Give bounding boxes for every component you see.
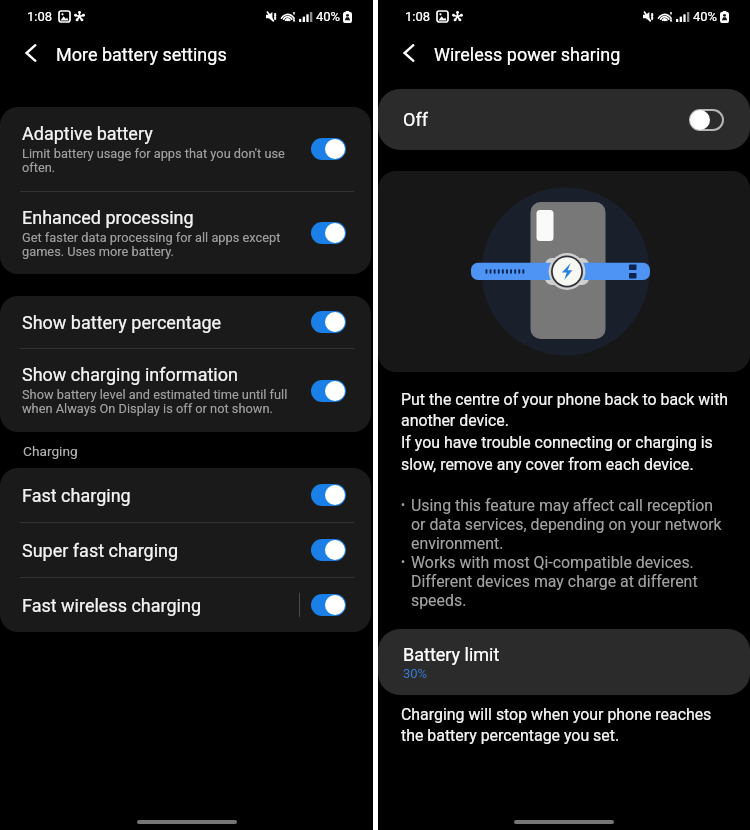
staticText: Fast wireless charging — [22, 595, 202, 616]
staticText: Off — [403, 109, 689, 130]
staticText: Charging will stop when your phone reach… — [401, 705, 726, 745]
button[interactable]: Super fast charging — [0, 523, 371, 577]
staticText: Charging — [23, 443, 78, 459]
button[interactable]: Battery limit — [378, 629, 750, 695]
button[interactable]: Fast charging — [0, 468, 371, 522]
button[interactable]: Show battery percentage — [0, 296, 371, 348]
staticText: Show battery level and estimated time un… — [22, 387, 290, 417]
staticText: Show battery percentage — [22, 312, 222, 333]
staticText: Limit battery usage for apps that you do… — [22, 146, 290, 176]
button[interactable]: Off — [378, 89, 750, 150]
staticText: Adaptive battery — [22, 123, 153, 144]
staticText: 1:08 — [27, 9, 53, 24]
staticText: Wireless power sharing — [434, 44, 621, 65]
staticText: Enhanced processing — [22, 207, 194, 228]
button[interactable]: Enhanced processing — [0, 192, 371, 274]
staticText: Works with most Qi-compatible devices. D… — [411, 553, 723, 610]
staticText: Show charging information — [22, 364, 238, 385]
staticText: Put the centre of your phone back to bac… — [401, 390, 734, 474]
button[interactable]: Fast wireless charging — [0, 578, 371, 632]
button[interactable]: Show charging information — [0, 349, 371, 432]
staticText: More battery settings — [56, 44, 227, 65]
button[interactable]: Adaptive battery — [0, 107, 371, 191]
staticText: 40% — [316, 9, 341, 24]
staticText: 30% — [403, 666, 428, 681]
staticText: Fast charging — [22, 485, 131, 506]
staticText: 1:08 — [405, 9, 431, 24]
staticText: Battery limit — [403, 644, 500, 665]
staticText: Super fast charging — [22, 540, 179, 561]
button[interactable]: Navigate up — [8, 34, 52, 72]
staticText: • — [401, 498, 406, 512]
staticText: 40% — [693, 9, 718, 24]
staticText: Using this feature may affect call recep… — [411, 496, 723, 553]
staticText: • — [401, 555, 406, 569]
button[interactable]: Navigate up — [386, 34, 430, 72]
staticText: Get faster data processing for all apps … — [22, 230, 290, 260]
